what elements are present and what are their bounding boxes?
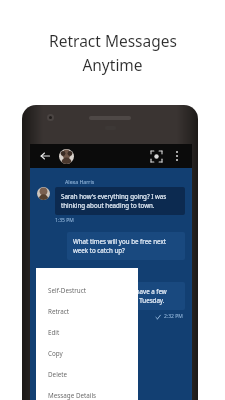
staticText: Anytime — [82, 54, 143, 75]
button[interactable]: What times will you be free next week to… — [67, 232, 185, 260]
button[interactable]: More options — [169, 148, 185, 164]
staticText: Alexa Harris — [65, 178, 95, 185]
button[interactable]: Back — [37, 148, 53, 164]
staticText: Self-Destruct — [48, 286, 87, 295]
staticText: That sounds great! I have a few openings… — [76, 287, 179, 305]
button[interactable]: Delete — [48, 364, 138, 385]
staticText: Copy — [48, 349, 63, 358]
button[interactable]: Edit — [48, 322, 138, 343]
staticText: 1:35 PM — [55, 217, 74, 224]
button[interactable]: Contact avatar — [59, 149, 74, 164]
button[interactable]: That sounds great! I have a few openings… — [70, 282, 185, 310]
staticText: Sarah how's everything going? I was thin… — [61, 192, 179, 210]
staticText: Edit — [48, 328, 60, 337]
staticText: Message Details — [48, 391, 97, 400]
button[interactable]: Camera — [147, 147, 165, 165]
button[interactable]: Copy — [48, 343, 138, 364]
staticText: Retract Messages — [49, 30, 177, 51]
staticText: Retract — [48, 307, 70, 316]
button[interactable]: Retract — [48, 301, 138, 322]
button[interactable]: Sarah how's everything going? I was thin… — [55, 187, 185, 215]
staticText: Delete — [48, 370, 68, 379]
staticText: 2:32 PM — [164, 313, 183, 320]
staticText: What times will you be free next week to… — [73, 237, 179, 255]
button[interactable]: Message Details — [48, 385, 138, 400]
button[interactable]: Self-Destruct — [48, 280, 138, 301]
